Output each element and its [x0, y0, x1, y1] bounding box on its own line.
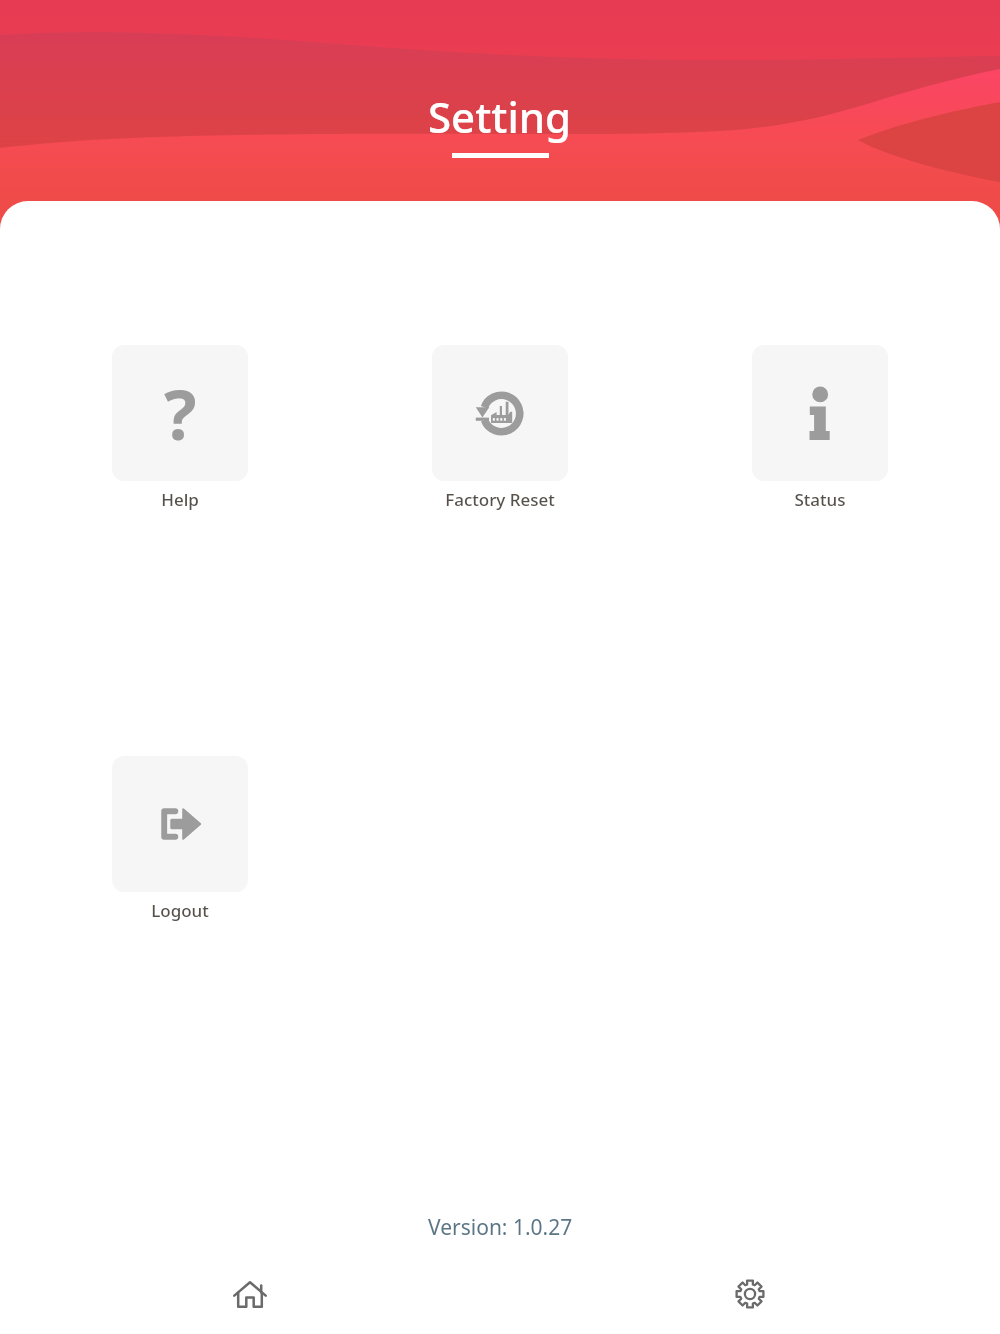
- button[interactable]: Help: [112, 345, 248, 481]
- button[interactable]: Factory Reset: [432, 345, 568, 481]
- staticText: Factory Reset: [445, 488, 555, 511]
- staticText: ?: [164, 367, 197, 460]
- staticText: Logout: [151, 899, 209, 922]
- button[interactable]: Logout: [112, 756, 248, 892]
- button[interactable]: Status: [752, 345, 888, 481]
- button[interactable]: Home: [0, 1254, 500, 1334]
- staticText: Setting: [428, 88, 572, 145]
- button[interactable]: Settings: [500, 1254, 1000, 1334]
- staticText: Version: 1.0.27: [428, 1213, 573, 1242]
- staticText: Status: [794, 488, 846, 511]
- staticText: Help: [161, 488, 199, 511]
